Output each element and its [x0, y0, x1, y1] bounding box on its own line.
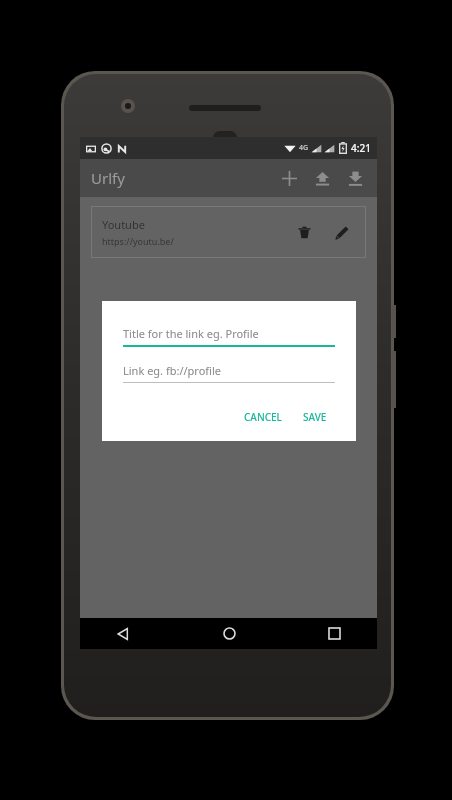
button[interactable]: Delete	[289, 217, 320, 248]
staticText: 4:21	[351, 141, 371, 155]
button[interactable]: SAVE	[295, 404, 335, 430]
button[interactable]: Back	[103, 618, 143, 649]
staticText: SAVE	[303, 410, 327, 424]
staticText: Link eg. fb://profile	[123, 363, 221, 378]
button[interactable]: CANCEL	[236, 404, 290, 430]
button[interactable]: Import	[339, 162, 372, 195]
staticText: https://youtu.be/	[102, 235, 174, 247]
staticText: CANCEL	[244, 410, 282, 424]
staticText: Urlfy	[91, 168, 125, 188]
button[interactable]: Export	[306, 162, 339, 195]
staticText: Youtube	[102, 217, 145, 232]
button[interactable]: Edit	[326, 217, 357, 248]
button[interactable]: Home	[209, 618, 249, 649]
button[interactable]: Recent apps	[314, 618, 354, 649]
button[interactable]: Add link	[273, 162, 306, 195]
staticText: 4G	[299, 143, 309, 153]
staticText: Title for the link eg. Profile	[123, 326, 259, 341]
button[interactable]: Youtube	[91, 206, 366, 258]
